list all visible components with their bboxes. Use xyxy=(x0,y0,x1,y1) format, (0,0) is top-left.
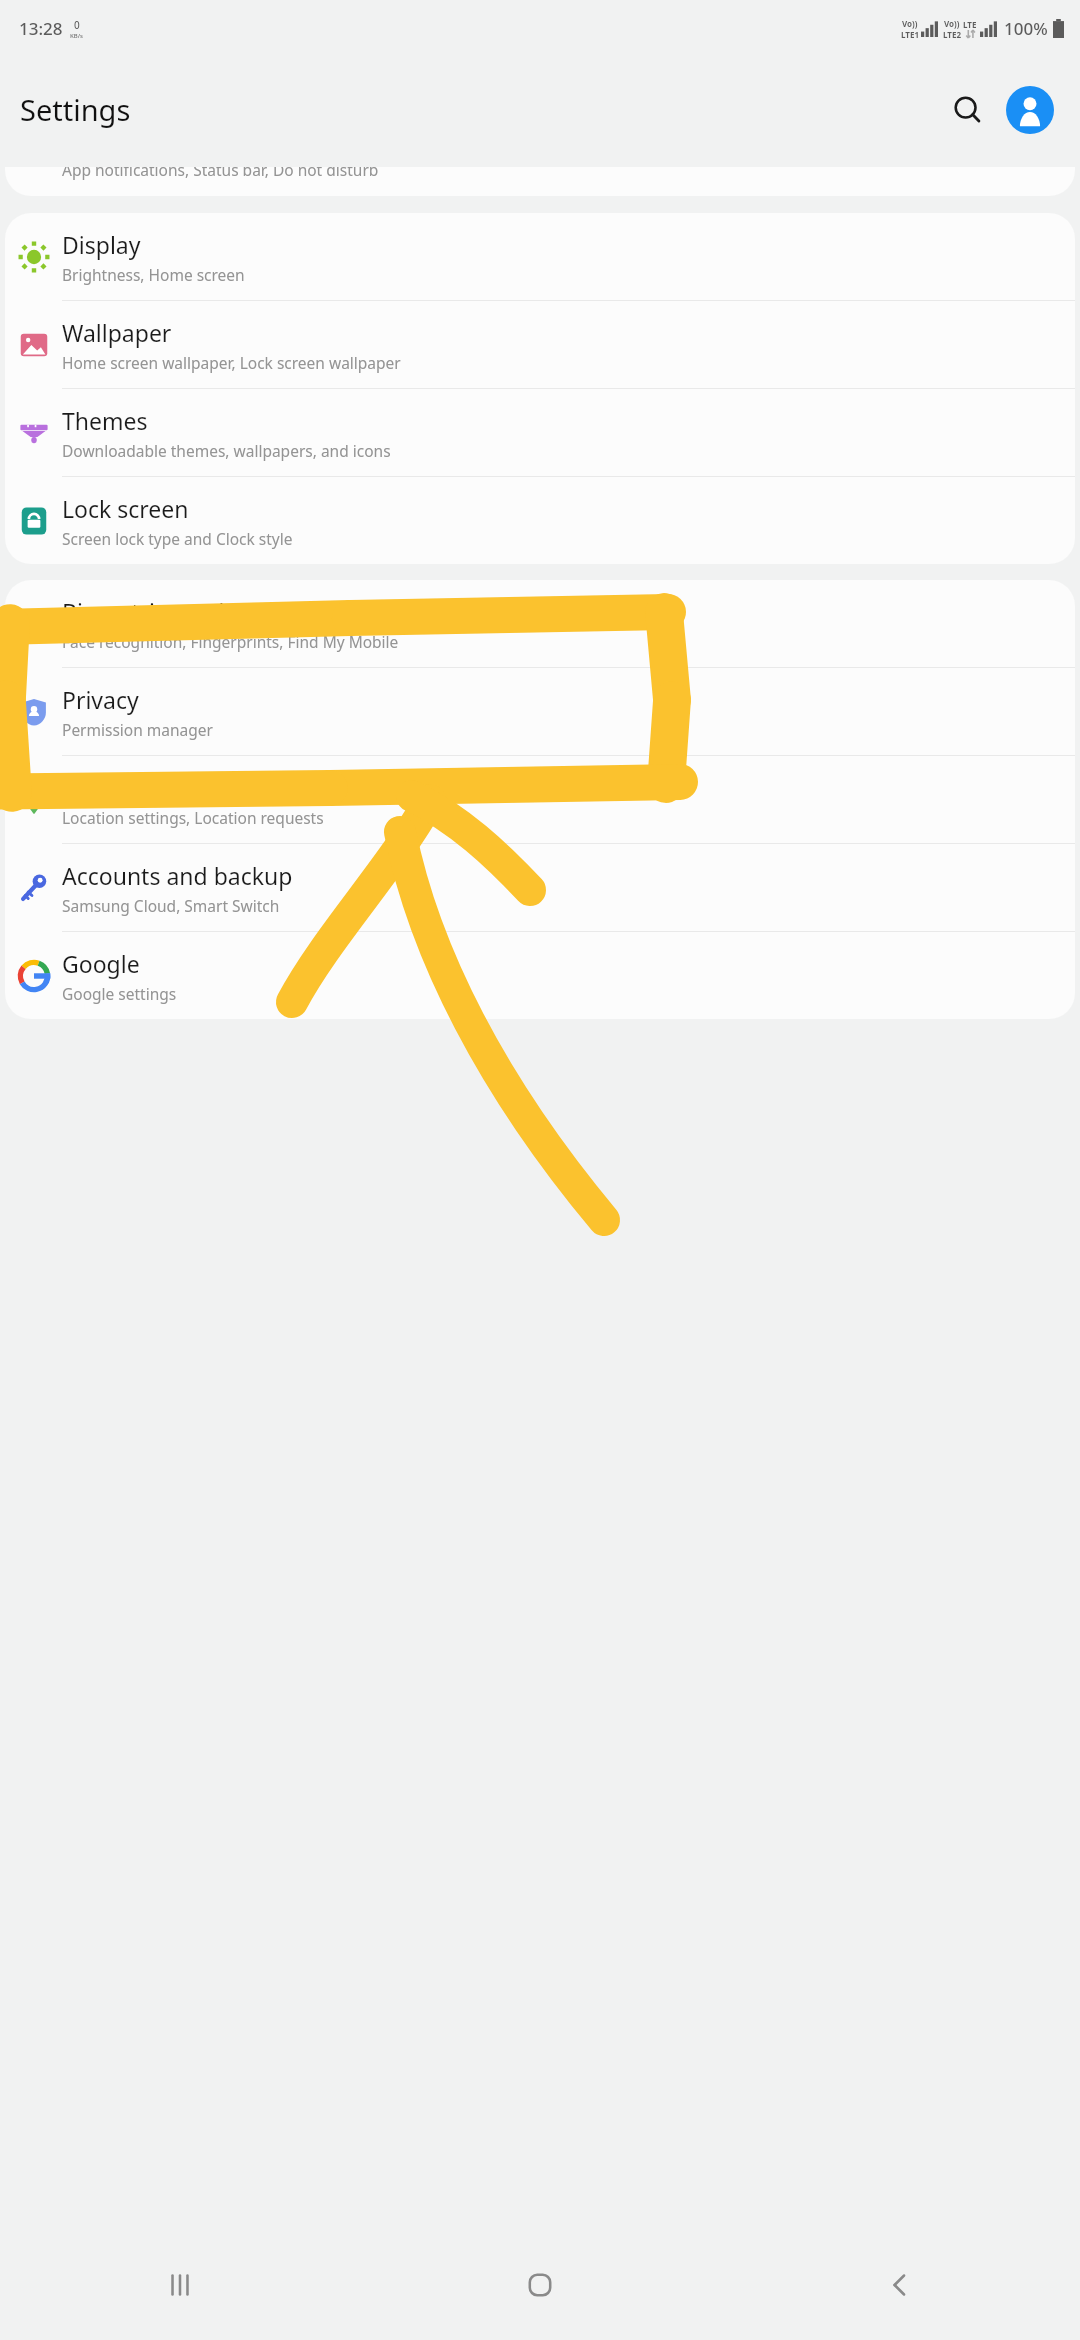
staticText: 13:28 xyxy=(19,17,63,40)
button[interactable]: Display xyxy=(5,213,1075,300)
staticText: Lock screen xyxy=(62,493,189,524)
staticText: KB/s xyxy=(70,32,83,40)
staticText: Location xyxy=(62,772,155,803)
button[interactable]: Biometrics and security xyxy=(5,580,1075,667)
staticText: Wallpaper xyxy=(62,317,172,348)
staticText: LTE2 xyxy=(943,29,961,40)
staticText: Face recognition, Fingerprints, Find My … xyxy=(62,631,399,652)
button[interactable]: Privacy xyxy=(5,668,1075,755)
button[interactable]: Wallpaper xyxy=(5,301,1075,388)
staticText: Brightness, Home screen xyxy=(62,264,245,285)
staticText: Accounts and backup xyxy=(62,860,293,891)
staticText: Location settings, Location requests xyxy=(62,807,324,828)
staticText: Home screen wallpaper, Lock screen wallp… xyxy=(62,352,401,373)
staticText: Permission manager xyxy=(62,719,213,740)
staticText: Vo)) xyxy=(944,18,960,29)
button[interactable]: Lock screen xyxy=(5,477,1075,564)
staticText: 0 xyxy=(74,18,80,32)
button[interactable]: Themes xyxy=(5,389,1075,476)
staticText: Privacy xyxy=(62,684,139,715)
staticText: Samsung Cloud, Smart Switch xyxy=(62,895,280,916)
button[interactable]: Home xyxy=(360,2230,720,2340)
staticText: Settings xyxy=(20,90,131,129)
button[interactable]: App notifications, Status bar, Do not di… xyxy=(5,167,1075,196)
button[interactable]: Account xyxy=(1002,82,1058,138)
button[interactable]: Google xyxy=(5,932,1075,1019)
staticText: Google xyxy=(62,948,140,979)
staticText: Themes xyxy=(62,405,148,436)
button[interactable]: Back xyxy=(720,2230,1080,2340)
staticText: App notifications, Status bar, Do not di… xyxy=(62,167,379,180)
staticText: LTE1 xyxy=(901,29,919,40)
button[interactable]: Accounts and backup xyxy=(5,844,1075,931)
staticText: Biometrics and security xyxy=(62,596,316,627)
staticText: 100% xyxy=(1004,17,1048,40)
button[interactable]: Recent apps xyxy=(0,2230,360,2340)
staticText: Vo)) xyxy=(902,18,918,29)
staticText: Google settings xyxy=(62,983,177,1004)
staticText: LTE xyxy=(963,19,977,30)
staticText: Screen lock type and Clock style xyxy=(62,528,293,549)
button[interactable]: Location xyxy=(5,756,1075,843)
staticText: Downloadable themes, wallpapers, and ico… xyxy=(62,440,391,461)
staticText: Display xyxy=(62,229,141,260)
button[interactable]: Search xyxy=(940,82,996,138)
